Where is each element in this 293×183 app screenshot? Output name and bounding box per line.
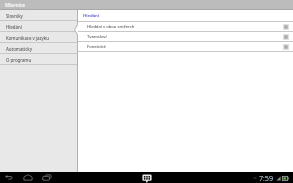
button[interactable]: Fonetické	[78, 42, 293, 52]
staticText: Tvarosloví	[87, 34, 283, 40]
staticText: nastavení aplikace	[5, 8, 31, 12]
button[interactable]: Back	[1, 172, 17, 183]
button[interactable]: Komunikace v jazyku	[0, 32, 78, 43]
button[interactable]: Hledání v obou směrech	[78, 22, 293, 32]
staticText: Slovníky	[6, 13, 23, 19]
button[interactable]: Hledání	[0, 21, 78, 32]
staticText: O programu	[6, 57, 32, 63]
button[interactable]: Automaticky	[0, 43, 78, 54]
button[interactable]: Home	[20, 172, 36, 183]
button[interactable]: Tvarosloví	[78, 32, 293, 42]
staticText: Hledání v obou směrech	[87, 24, 283, 30]
staticText: Mluvnice	[5, 2, 25, 8]
button[interactable]: Keyboard	[140, 172, 154, 183]
staticText: Hledání	[83, 13, 100, 19]
staticText: 7:59	[259, 173, 274, 183]
button[interactable]: O programu	[0, 54, 78, 65]
button[interactable]: Slovníky	[0, 10, 78, 21]
staticText: Komunikace v jazyku	[6, 35, 49, 41]
staticText: Fonetické	[87, 44, 283, 50]
button[interactable]: Recent apps	[39, 172, 55, 183]
staticText: Hledání	[6, 24, 22, 30]
staticText: Automaticky	[6, 46, 32, 52]
